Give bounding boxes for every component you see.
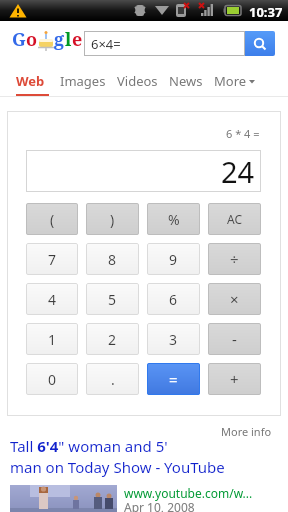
staticText: 9 bbox=[169, 250, 178, 269]
staticText: Apr 10, 2008 bbox=[124, 499, 195, 512]
button[interactable]: 6 bbox=[147, 283, 200, 315]
staticText: × bbox=[230, 289, 239, 309]
button[interactable]: 4 bbox=[26, 283, 78, 315]
staticText: . bbox=[111, 370, 115, 389]
staticText: ) bbox=[110, 210, 115, 229]
button[interactable]: Tall 6'4" woman and 5' man on Today Show… bbox=[10, 436, 225, 478]
staticText: = bbox=[169, 369, 178, 389]
staticText: 7 bbox=[48, 250, 57, 269]
staticText: 3 bbox=[169, 330, 178, 349]
staticText: 1 bbox=[48, 330, 57, 349]
staticText: ÷ bbox=[230, 249, 239, 269]
button[interactable]: × bbox=[208, 283, 261, 315]
button[interactable]: 3 bbox=[147, 323, 200, 355]
button[interactable]: More info bbox=[221, 424, 272, 439]
button[interactable]: 9 bbox=[147, 243, 200, 275]
button[interactable]: = bbox=[147, 363, 200, 395]
button[interactable]: 2 bbox=[86, 323, 139, 355]
button[interactable]: 7 bbox=[26, 243, 78, 275]
staticText: l bbox=[65, 27, 72, 52]
button[interactable]: ÷ bbox=[208, 243, 261, 275]
staticText: 5 bbox=[108, 290, 117, 309]
button[interactable]: www.youtube.com/w... bbox=[124, 485, 253, 501]
staticText: AC bbox=[227, 211, 243, 227]
button[interactable]: Videos bbox=[117, 72, 158, 90]
staticText: 2 bbox=[108, 330, 117, 349]
button[interactable]: - bbox=[208, 323, 261, 355]
button[interactable]: . bbox=[86, 363, 139, 395]
staticText: 0 bbox=[48, 370, 57, 389]
button[interactable]: 8 bbox=[86, 243, 139, 275]
staticText: 10:37 bbox=[249, 3, 283, 21]
staticText: g bbox=[54, 27, 65, 52]
staticText: Web bbox=[16, 72, 45, 90]
staticText: G bbox=[12, 27, 26, 52]
button[interactable]: % bbox=[147, 203, 200, 235]
staticText: ( bbox=[50, 210, 55, 229]
button[interactable] bbox=[245, 31, 275, 56]
button[interactable]: More bbox=[214, 72, 257, 90]
button[interactable]: Images bbox=[60, 72, 106, 90]
button[interactable]: 1 bbox=[26, 323, 78, 355]
button[interactable]: News bbox=[169, 72, 203, 90]
button[interactable]: 6×4= bbox=[84, 31, 245, 56]
button[interactable]: + bbox=[208, 363, 261, 395]
staticText: 6 bbox=[169, 290, 178, 309]
button[interactable]: 5 bbox=[86, 283, 139, 315]
staticText: 4 bbox=[48, 290, 57, 309]
staticText: 24 bbox=[221, 152, 255, 191]
staticText: - bbox=[232, 329, 237, 349]
staticText: e bbox=[72, 27, 83, 52]
staticText: 8 bbox=[108, 250, 117, 269]
button[interactable] bbox=[10, 485, 117, 512]
button[interactable]: G bbox=[12, 27, 83, 52]
button[interactable]: ( bbox=[26, 203, 78, 235]
staticText: 6×4= bbox=[91, 35, 121, 53]
staticText: More bbox=[214, 72, 247, 90]
button[interactable]: AC bbox=[208, 203, 261, 235]
button[interactable]: 0 bbox=[26, 363, 78, 395]
button[interactable]: Web bbox=[16, 72, 49, 97]
staticText: % bbox=[168, 210, 180, 229]
staticText: 6 * 4 = bbox=[226, 126, 260, 141]
staticText: o bbox=[26, 27, 38, 52]
staticText: + bbox=[230, 369, 239, 389]
button[interactable]: ) bbox=[86, 203, 139, 235]
